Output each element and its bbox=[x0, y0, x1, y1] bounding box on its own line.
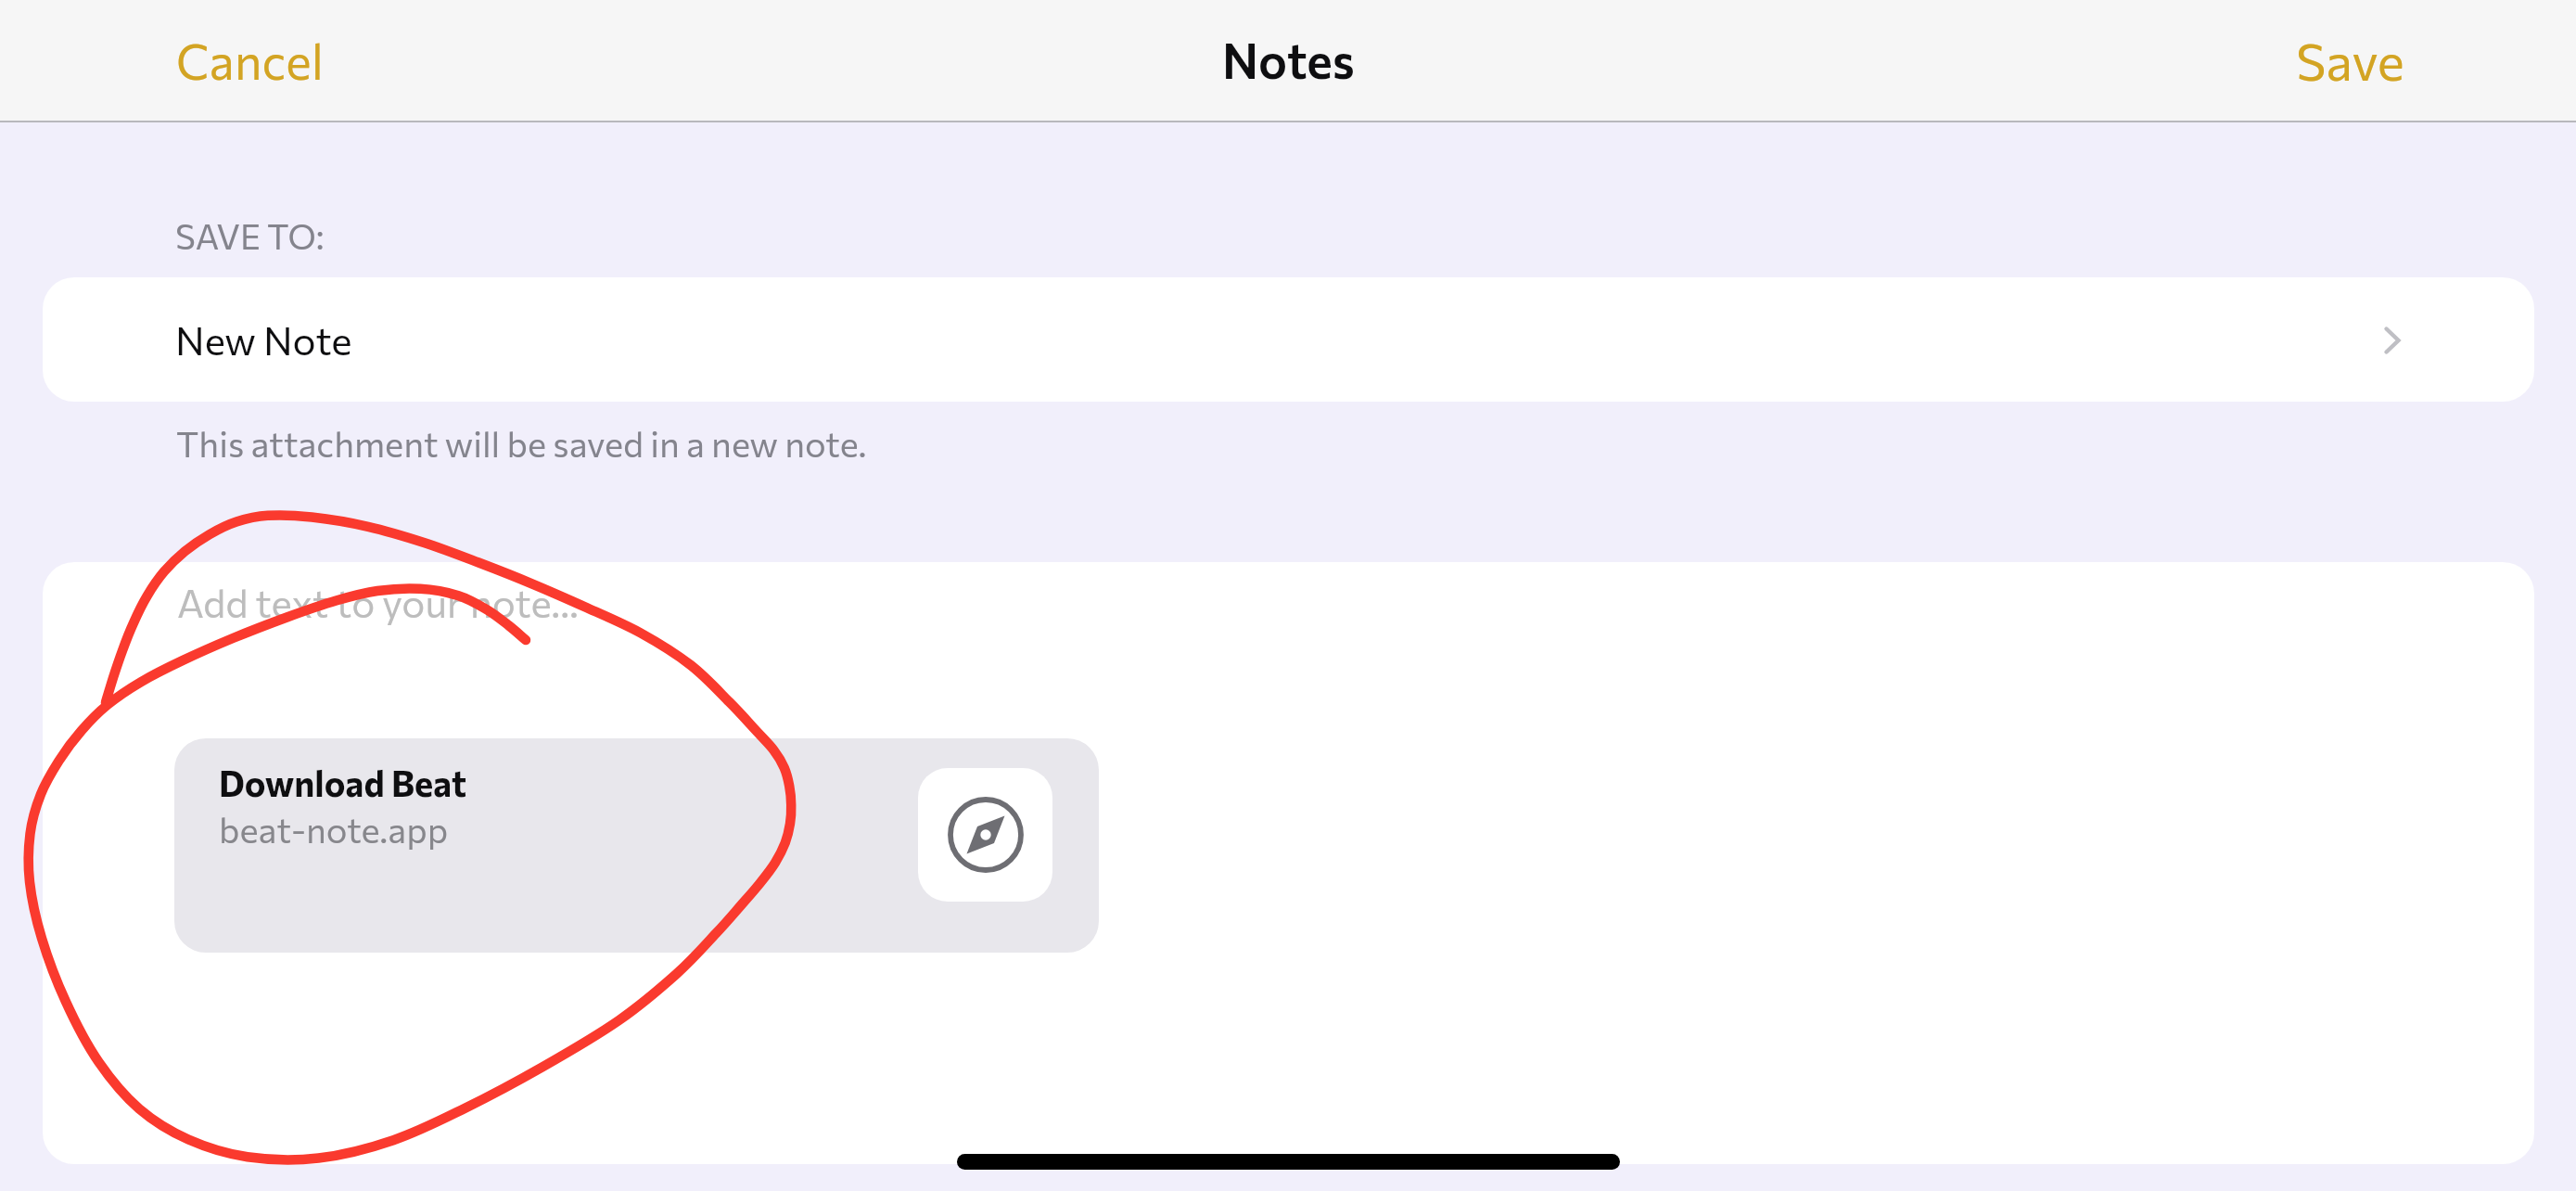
other: Choose note bbox=[2384, 327, 2401, 354]
button[interactable]: New Note bbox=[43, 277, 2534, 402]
staticText: Download Beat bbox=[219, 761, 467, 803]
button[interactable]: Add text to your note... bbox=[43, 562, 2534, 1164]
staticText: Cancel bbox=[176, 31, 324, 90]
button[interactable]: Save bbox=[2229, 5, 2471, 115]
button[interactable]: Open link in Safari bbox=[918, 768, 1052, 902]
staticText: Add text to your note... bbox=[177, 578, 580, 625]
staticText: SAVE TO: bbox=[175, 214, 325, 256]
staticText: Save bbox=[2296, 29, 2404, 91]
staticText: This attachment will be saved in a new n… bbox=[176, 421, 867, 464]
button[interactable]: Download Beat bbox=[174, 738, 1099, 953]
staticText: Notes bbox=[1222, 30, 1355, 89]
staticText: beat-note.app bbox=[219, 807, 449, 850]
button[interactable]: Cancel bbox=[109, 6, 390, 114]
staticText: New Note bbox=[175, 315, 352, 363]
